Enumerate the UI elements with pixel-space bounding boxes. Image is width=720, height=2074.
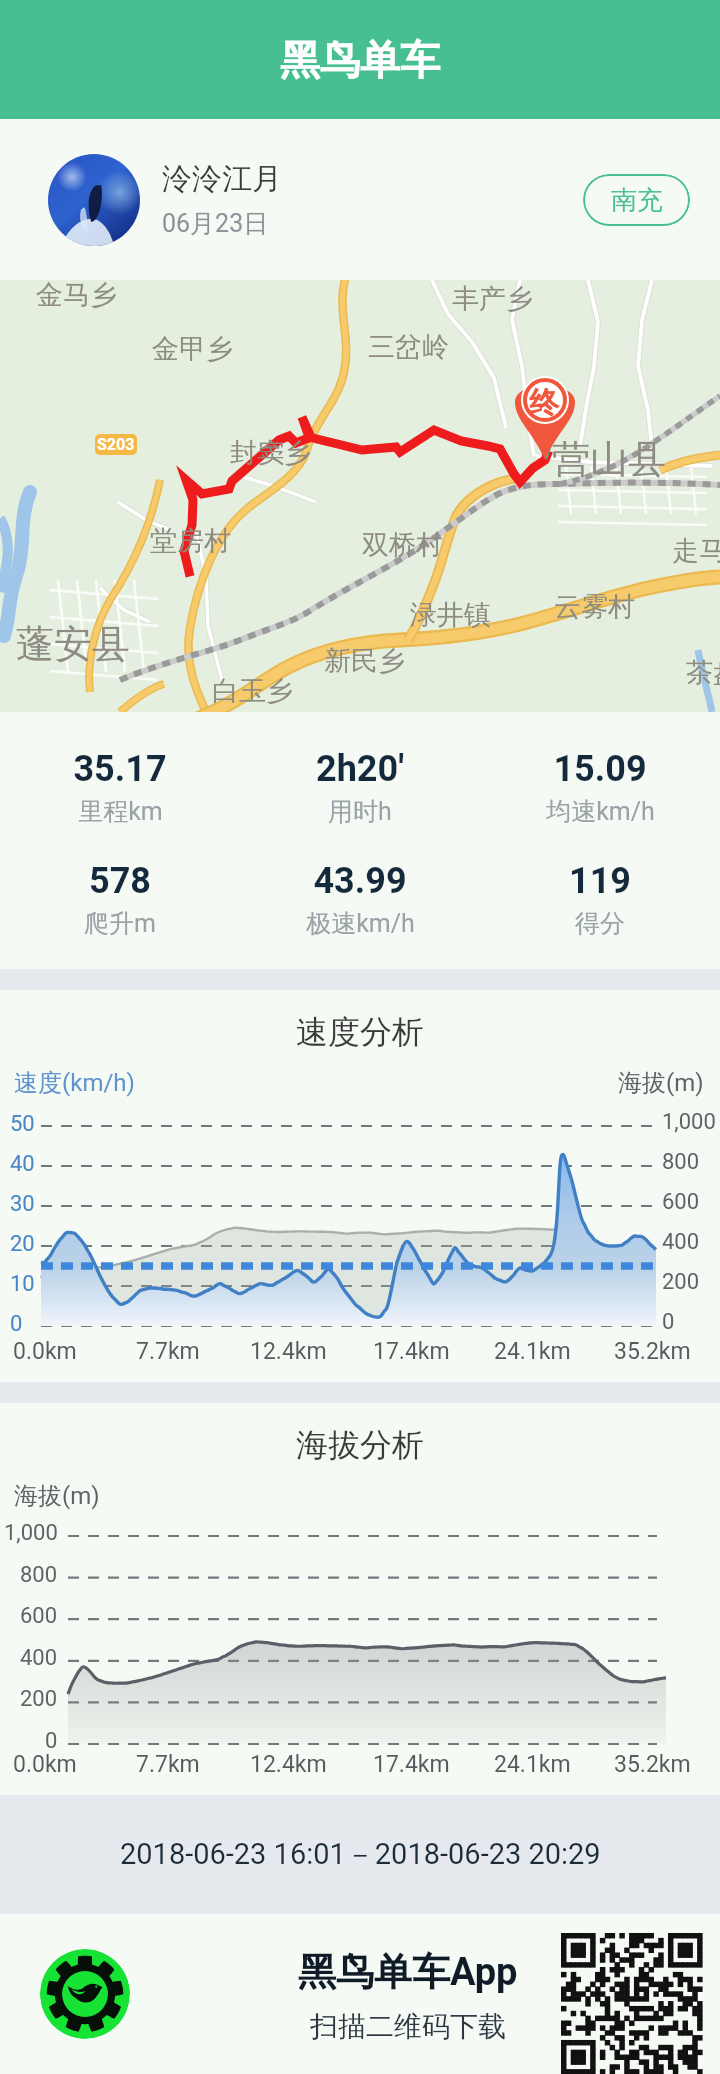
staticText: 10 <box>10 1271 35 1297</box>
staticText: 茶盘 <box>686 656 720 690</box>
button[interactable]: 119 <box>480 860 720 939</box>
staticText: 12.4km <box>250 1751 327 1778</box>
staticText: 用时h <box>328 796 392 827</box>
staticText: 海拔(m) <box>14 1481 100 1511</box>
staticText: 7.7km <box>136 1338 200 1365</box>
staticText: 600 <box>662 1189 700 1215</box>
staticText: 新民乡 <box>324 644 405 678</box>
staticText: 578 <box>89 860 151 902</box>
staticText: 40 <box>10 1151 35 1177</box>
button[interactable]: 2h20' <box>240 748 480 827</box>
staticText: 06月23日 <box>162 208 269 239</box>
staticText: 海拔分析 <box>296 1425 424 1465</box>
staticText: 24.1km <box>494 1751 571 1778</box>
button[interactable]: App logo <box>40 1949 130 2039</box>
staticText: 1,000 <box>4 1520 58 1546</box>
staticText: 7.7km <box>136 1751 200 1778</box>
staticText: 黑鸟单车 <box>280 35 440 85</box>
staticText: 200 <box>662 1269 700 1295</box>
staticText: 渌井镇 <box>410 598 491 632</box>
staticText: 得分 <box>575 908 625 939</box>
staticText: 119 <box>569 860 631 902</box>
staticText: 12.4km <box>250 1338 327 1365</box>
staticText: 终 <box>529 384 559 422</box>
staticText: 24.1km <box>494 1338 571 1365</box>
staticText: 2h20' <box>316 748 404 790</box>
staticText: 800 <box>662 1149 700 1175</box>
staticText: 50 <box>10 1111 35 1137</box>
button[interactable]: 578 <box>0 860 240 939</box>
staticText: 均速km/h <box>546 796 655 827</box>
button[interactable]: 南充 <box>583 174 690 226</box>
staticText: 金甲乡 <box>152 332 233 366</box>
staticText: 20 <box>10 1231 35 1257</box>
staticText: S203 <box>97 435 135 454</box>
staticText: 35.2km <box>614 1751 691 1778</box>
staticText: 堂房村 <box>150 524 231 558</box>
staticText: 泠泠江月 <box>162 160 282 198</box>
staticText: 400 <box>20 1645 58 1671</box>
staticText: 35.17 <box>73 748 167 790</box>
staticText: 云雾村 <box>554 590 635 624</box>
staticText: 极速km/h <box>306 908 415 939</box>
staticText: 金马乡 <box>36 280 117 312</box>
staticText: 速度(km/h) <box>14 1068 135 1098</box>
staticText: 蓬安县 <box>16 620 130 668</box>
staticText: 17.4km <box>373 1751 450 1778</box>
staticText: 30 <box>10 1191 35 1217</box>
staticText: 南充 <box>611 184 663 217</box>
staticText: 0 <box>45 1728 58 1754</box>
button[interactable]: 15.09 <box>480 748 720 827</box>
staticText: 43.99 <box>313 860 407 902</box>
staticText: 1,000 <box>662 1109 716 1135</box>
staticText: 扫描二维码下载 <box>310 2009 506 2044</box>
staticText: 2018-06-23 16:01－2018-06-23 20:29 <box>120 1836 601 1873</box>
staticText: 封窦乡 <box>230 436 311 470</box>
staticText: 800 <box>20 1562 58 1588</box>
staticText: 15.09 <box>553 748 647 790</box>
staticText: 0.0km <box>13 1338 77 1365</box>
button[interactable]: 43.99 <box>240 860 480 939</box>
staticText: 海拔(m) <box>618 1068 704 1098</box>
staticText: 走马山 <box>672 534 720 568</box>
staticText: 速度分析 <box>296 1012 424 1052</box>
button[interactable]: QR code to download app <box>561 1933 702 2074</box>
staticText: 丰产乡 <box>452 282 533 316</box>
button[interactable]: 35.17 <box>0 748 240 827</box>
staticText: 0.0km <box>13 1751 77 1778</box>
staticText: 400 <box>662 1229 700 1255</box>
button[interactable]: Route map <box>0 280 720 712</box>
staticText: 爬升m <box>84 908 156 939</box>
staticText: 里程km <box>78 796 163 827</box>
staticText: 17.4km <box>373 1338 450 1365</box>
staticText: 200 <box>20 1686 58 1712</box>
staticText: 黑鸟单车App <box>298 1948 518 1996</box>
staticText: 600 <box>20 1603 58 1629</box>
staticText: 双桥村 <box>362 528 443 562</box>
staticText: 营山县 <box>552 435 666 483</box>
staticText: 白玉乡 <box>212 674 293 708</box>
staticText: 三岔岭 <box>368 330 449 364</box>
staticText: 0 <box>10 1311 23 1337</box>
staticText: 35.2km <box>614 1338 691 1365</box>
staticText: 0 <box>662 1309 675 1335</box>
button[interactable]: 黑鸟单车 <box>0 0 720 119</box>
